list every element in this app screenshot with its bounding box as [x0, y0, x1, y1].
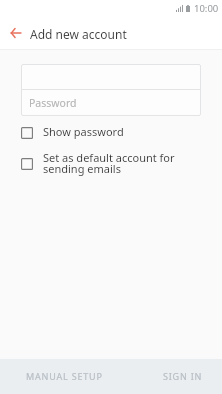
- button[interactable]: [21, 64, 201, 89]
- button[interactable]: SIGN IN: [144, 359, 222, 394]
- staticText: Set as default account for sending email…: [43, 150, 184, 177]
- button[interactable]: MANUAL SETUP: [0, 359, 128, 394]
- button[interactable]: Back: [0, 22, 26, 49]
- staticText: Add new account: [30, 26, 127, 42]
- staticText: Password: [29, 96, 77, 110]
- button[interactable]: Password: [21, 90, 201, 116]
- staticText: SIGN IN: [163, 370, 203, 382]
- staticText: 10:00: [194, 2, 219, 15]
- staticText: Show password: [43, 124, 124, 139]
- button[interactable]: Show password: [0, 124, 222, 141]
- button[interactable]: Set as default account for sending email…: [0, 151, 222, 178]
- staticText: MANUAL SETUP: [26, 370, 103, 382]
